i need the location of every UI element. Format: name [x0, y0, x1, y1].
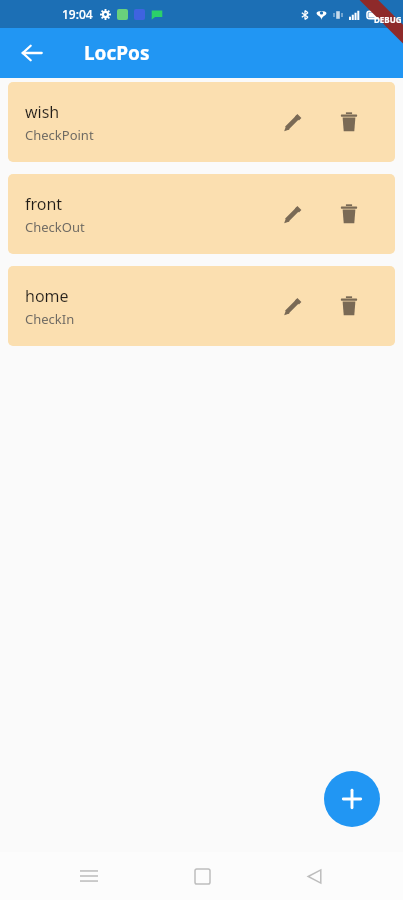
- button[interactable]: Navigate back: [10, 31, 54, 75]
- staticText: CheckPoint: [25, 126, 94, 144]
- staticText: wish: [25, 101, 60, 123]
- button[interactable]: Recent apps: [65, 852, 113, 900]
- button[interactable]: Add location: [324, 771, 380, 827]
- button[interactable]: front: [8, 174, 395, 254]
- button[interactable]: Delete front: [329, 194, 369, 234]
- staticText: home: [25, 285, 69, 307]
- button[interactable]: Back: [290, 852, 338, 900]
- button[interactable]: Delete home: [329, 286, 369, 326]
- button[interactable]: wish: [8, 82, 395, 162]
- staticText: CheckIn: [25, 310, 75, 328]
- button[interactable]: Edit front: [273, 194, 313, 234]
- other: Add location: [324, 771, 380, 827]
- button[interactable]: Home: [178, 852, 226, 900]
- button[interactable]: home: [8, 266, 395, 346]
- button[interactable]: Delete wish: [329, 102, 369, 142]
- staticText: DEBUG: [374, 14, 402, 25]
- button[interactable]: Edit wish: [273, 102, 313, 142]
- button[interactable]: Edit home: [273, 286, 313, 326]
- staticText: front: [25, 193, 63, 215]
- staticText: LocPos: [84, 40, 150, 66]
- staticText: 19:04: [62, 6, 93, 22]
- staticText: CheckOut: [25, 218, 85, 236]
